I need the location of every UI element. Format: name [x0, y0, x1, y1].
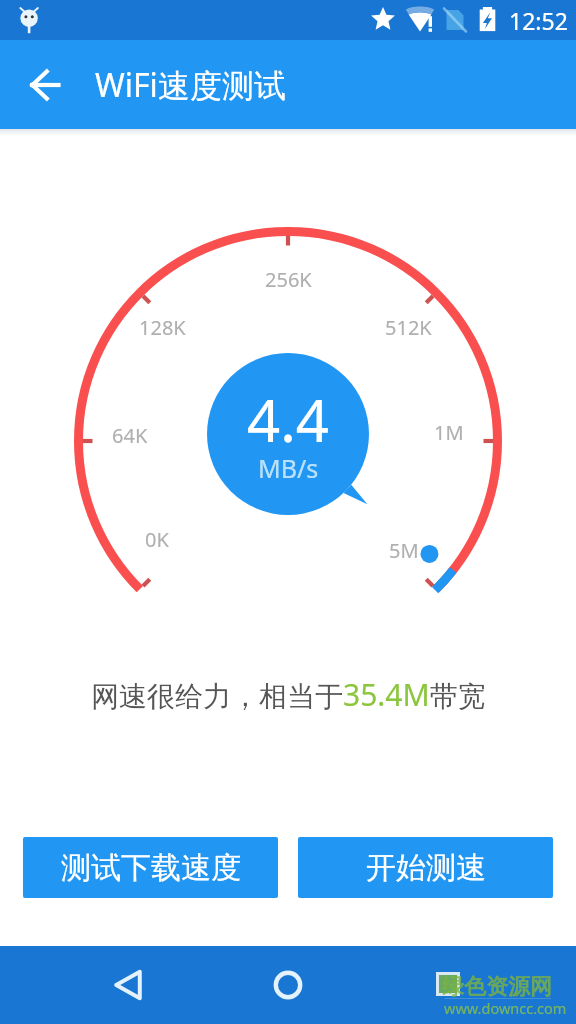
button[interactable]: Back: [21, 61, 69, 109]
staticText: 绿色资源网: [442, 973, 552, 1001]
button[interactable]: 开始测速: [298, 837, 553, 898]
staticText: MB/s: [258, 451, 319, 485]
button[interactable]: Back: [100, 957, 156, 1013]
staticText: 1M: [434, 419, 464, 446]
staticText: 网速很给力，相当于35.4M带宽: [91, 674, 486, 715]
staticText: 测试下载速度: [61, 849, 241, 887]
staticText: 0K: [145, 526, 169, 553]
staticText: 5M: [389, 537, 419, 564]
staticText: 64K: [112, 422, 148, 449]
staticText: 128K: [139, 314, 186, 341]
staticText: www.downcc.com: [444, 998, 567, 1018]
staticText: 512K: [385, 314, 432, 341]
button[interactable]: Home: [260, 957, 316, 1013]
button[interactable]: 测试下载速度: [23, 837, 278, 898]
staticText: 4.4: [247, 380, 329, 459]
staticText: WiFi速度测试: [95, 63, 286, 107]
staticText: 256K: [265, 266, 312, 293]
staticText: 12:52: [509, 5, 568, 36]
staticText: 开始测速: [366, 849, 486, 887]
